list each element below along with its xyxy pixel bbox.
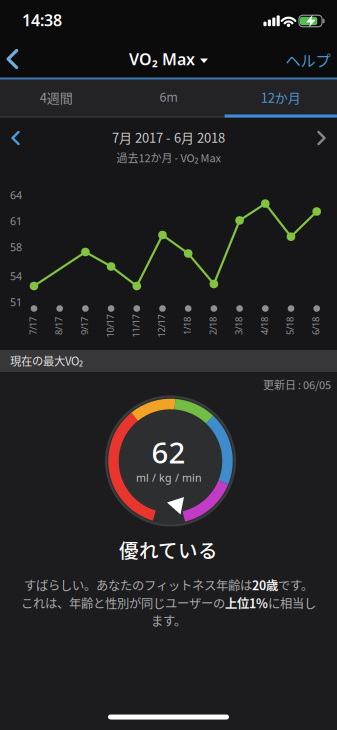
- staticText: 58: [10, 240, 22, 254]
- staticText: 54: [10, 269, 22, 283]
- staticText: 更新日 : 06/05: [263, 376, 331, 392]
- staticText: に相当し: [268, 594, 316, 612]
- staticText: 2/18: [204, 320, 222, 332]
- staticText: 61: [10, 214, 22, 228]
- staticText: 62: [151, 432, 185, 471]
- button[interactable]: Previous period: [10, 131, 21, 145]
- staticText: 12か月: [261, 88, 301, 106]
- button[interactable]: 6m: [112, 78, 224, 115]
- button[interactable]: 12か月: [225, 78, 337, 115]
- staticText: 現在の最大VO₂: [10, 352, 83, 369]
- staticText: 51: [10, 295, 22, 309]
- staticText: 4週間: [40, 88, 73, 106]
- staticText: です。: [278, 576, 313, 594]
- staticText: 上位1%: [225, 594, 268, 612]
- button[interactable]: VO₂ Max: [129, 48, 208, 70]
- staticText: ヘルプ: [285, 48, 330, 70]
- staticText: 11/17: [124, 320, 147, 332]
- staticText: 優れている: [119, 535, 218, 564]
- staticText: 1/18: [178, 320, 196, 332]
- staticText: 14:38: [22, 9, 62, 31]
- staticText: 9/17: [75, 320, 93, 332]
- staticText: 20歳: [252, 576, 278, 594]
- staticText: 10/17: [99, 320, 122, 332]
- staticText: VO₂ Max: [129, 48, 195, 70]
- staticText: 6m: [159, 89, 177, 105]
- staticText: すばらしい。あなたのフィットネス年齢は: [24, 576, 252, 594]
- staticText: 6/18: [307, 320, 325, 332]
- button[interactable]: ヘルプ: [285, 48, 330, 70]
- staticText: 5/18: [281, 320, 299, 332]
- staticText: 12/17: [150, 320, 173, 332]
- button[interactable]: 4週間: [0, 78, 112, 115]
- staticText: これは、年齢と性別が同じユーザーの: [21, 594, 225, 612]
- staticText: 64: [10, 188, 22, 202]
- staticText: 7/17: [24, 320, 42, 332]
- staticText: ml / kg / min: [136, 470, 202, 485]
- staticText: 8/17: [50, 320, 68, 332]
- staticText: 3/18: [230, 320, 248, 332]
- staticText: ます。: [151, 612, 186, 629]
- button[interactable]: Next period: [316, 131, 327, 145]
- staticText: 7月 2017 - 6月 2018: [112, 128, 225, 146]
- staticText: 4/18: [255, 320, 273, 332]
- staticText: 過去12か月 - VO₂ Max: [116, 149, 220, 165]
- button[interactable]: Back: [4, 48, 22, 69]
